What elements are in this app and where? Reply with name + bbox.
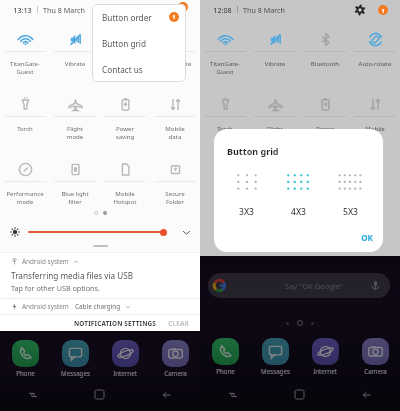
button[interactable]: Expand [181,227,192,238]
button[interactable]: Say "OK Google" [208,273,390,298]
staticText: Button grid [227,145,279,157]
staticText: Internet [313,367,337,375]
staticText: Mobile [350,124,400,132]
button[interactable]: Button grid [92,30,186,56]
button[interactable]: Settings [354,4,366,16]
staticText: Android system [22,257,69,266]
button[interactable]: Back [333,383,400,406]
button[interactable]: Messages [50,340,100,382]
staticText: Power saving [100,124,150,140]
staticText: Flight mode [50,124,100,140]
staticText: Button order [102,12,152,23]
staticText: Say "OK Google" [285,281,343,291]
button[interactable]: Phone [200,338,250,380]
button[interactable]: Camera [350,338,400,380]
button[interactable]: Flight mode [50,91,100,156]
button[interactable]: Home [266,383,333,406]
button[interactable]: TitanGate- Guest [0,26,50,91]
button[interactable]: Mobile [350,91,400,156]
staticText: Internet [113,369,137,377]
staticText: 5X3 [343,206,358,218]
button[interactable]: Torch [0,91,50,156]
staticText: Messages [61,369,90,377]
staticText: Mobile Hotspot [100,189,150,205]
staticText: OK [361,232,373,243]
staticText: Flight [250,124,300,132]
button[interactable]: Flight [250,91,300,156]
staticText: 13:13 [13,5,32,15]
staticText: CLEAR [168,319,189,328]
button[interactable]: Contact us [92,56,186,82]
button[interactable]: Blue light filter [50,156,100,221]
staticText: 1 [381,7,385,14]
button[interactable]: 3X3 [221,172,272,218]
staticText: NOTIFICATION SETTINGS [74,319,156,328]
button[interactable]: Internet [100,340,150,382]
button[interactable]: Internet [300,338,350,380]
staticText: Camera [364,367,387,375]
button[interactable]: Power saving [100,91,150,156]
button[interactable]: More options [378,5,388,15]
button[interactable]: Mobile Hotspot [100,156,150,221]
staticText: 12:08 [213,5,232,15]
staticText: Power [300,124,350,132]
button[interactable]: Back [133,383,200,406]
staticText: Vibrate [250,59,300,67]
staticText: Auto-rotate [350,59,400,67]
button[interactable]: Recents [200,383,266,406]
staticText: Cable charging [75,302,121,311]
staticText: Blue light filter [50,189,100,205]
staticText: Thu 8 March [243,5,285,15]
button[interactable]: Camera [150,340,200,382]
button[interactable]: Power [300,91,350,156]
staticText: Torch [200,124,250,132]
staticText: Messages [261,367,290,375]
staticText: Camera [164,369,187,377]
button[interactable]: Mobile data [150,91,200,156]
staticText: Tap for other USB options. [11,283,100,293]
staticText: Contact us [102,64,143,75]
staticText: TitanGate- Guest [200,59,250,75]
button[interactable]: Phone [0,340,50,382]
staticText: Button grid [102,38,146,49]
button[interactable]: OK [357,228,377,247]
button[interactable]: Vibrate [50,26,100,91]
staticText: Transferring media files via USB [11,270,134,281]
button[interactable]: TitanGate- Guest [200,26,250,91]
staticText: 3X3 [239,206,254,218]
staticText: Torch [0,124,50,132]
staticText: Bluetooth [100,59,150,67]
button[interactable]: Button order [92,4,186,30]
button[interactable]: Vibrate [250,26,300,91]
button[interactable]: Bluetooth [300,26,350,91]
other: Voice search [370,280,381,291]
staticText: Vibrate [50,59,100,67]
button[interactable]: 5X3 [324,172,376,218]
staticText: Phone [216,367,235,375]
button[interactable]: Bluetooth [100,26,150,91]
staticText: Mobile data [150,124,200,140]
staticText: Thu 8 March [43,5,85,15]
staticText: 1 [172,13,176,21]
button[interactable]: CLEAR [166,319,191,328]
button[interactable]: Performance mode [0,156,50,221]
staticText: Phone [16,369,35,377]
staticText: Performance mode [0,189,50,205]
button[interactable]: Secure Folder [150,156,200,221]
button[interactable]: NOTIFICATION SETTINGS [72,319,158,328]
staticText: Android system [22,302,69,311]
staticText: Bluetooth [300,59,350,67]
staticText: Auto-rotate [150,59,200,67]
staticText: TitanGate- Guest [0,59,50,75]
button[interactable]: Torch [200,91,250,156]
button[interactable]: Messages [250,338,300,380]
button[interactable]: Auto-rotate [350,26,400,91]
button[interactable]: Home [66,383,133,406]
button[interactable]: Auto-rotate [150,26,200,91]
staticText: Secure Folder [150,189,200,205]
button[interactable]: Recents [0,383,66,406]
staticText: 4X3 [291,206,306,218]
button[interactable]: 4X3 [272,172,324,218]
